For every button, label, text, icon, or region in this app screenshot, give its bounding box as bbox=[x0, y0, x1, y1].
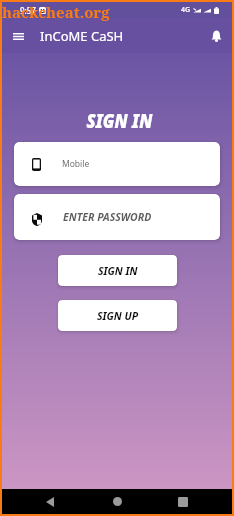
staticText: 9:57 bbox=[20, 5, 36, 16]
staticText: hackcheat.org bbox=[2, 2, 110, 22]
button[interactable]: SIGN UP bbox=[58, 300, 177, 331]
staticText: ENTER PASSWORD bbox=[63, 210, 152, 224]
staticText: Mobile bbox=[62, 158, 90, 170]
button[interactable]: ENTER PASSWORD bbox=[14, 194, 220, 240]
button[interactable]: Mobile bbox=[14, 142, 220, 186]
staticText: SIGN UP bbox=[97, 309, 139, 323]
button[interactable]: Home bbox=[103, 489, 131, 514]
staticText: SIGN IN bbox=[98, 264, 138, 278]
button[interactable]: Back bbox=[36, 489, 64, 514]
staticText: 4G bbox=[181, 5, 191, 15]
staticText: InCoME CaSH bbox=[40, 27, 124, 45]
button[interactable]: SIGN IN bbox=[58, 255, 177, 286]
button[interactable]: Notifications bbox=[204, 24, 228, 48]
staticText: SIGN IN bbox=[86, 108, 152, 134]
button[interactable]: Open navigation menu bbox=[6, 24, 30, 48]
button[interactable]: Recent apps bbox=[169, 489, 197, 514]
